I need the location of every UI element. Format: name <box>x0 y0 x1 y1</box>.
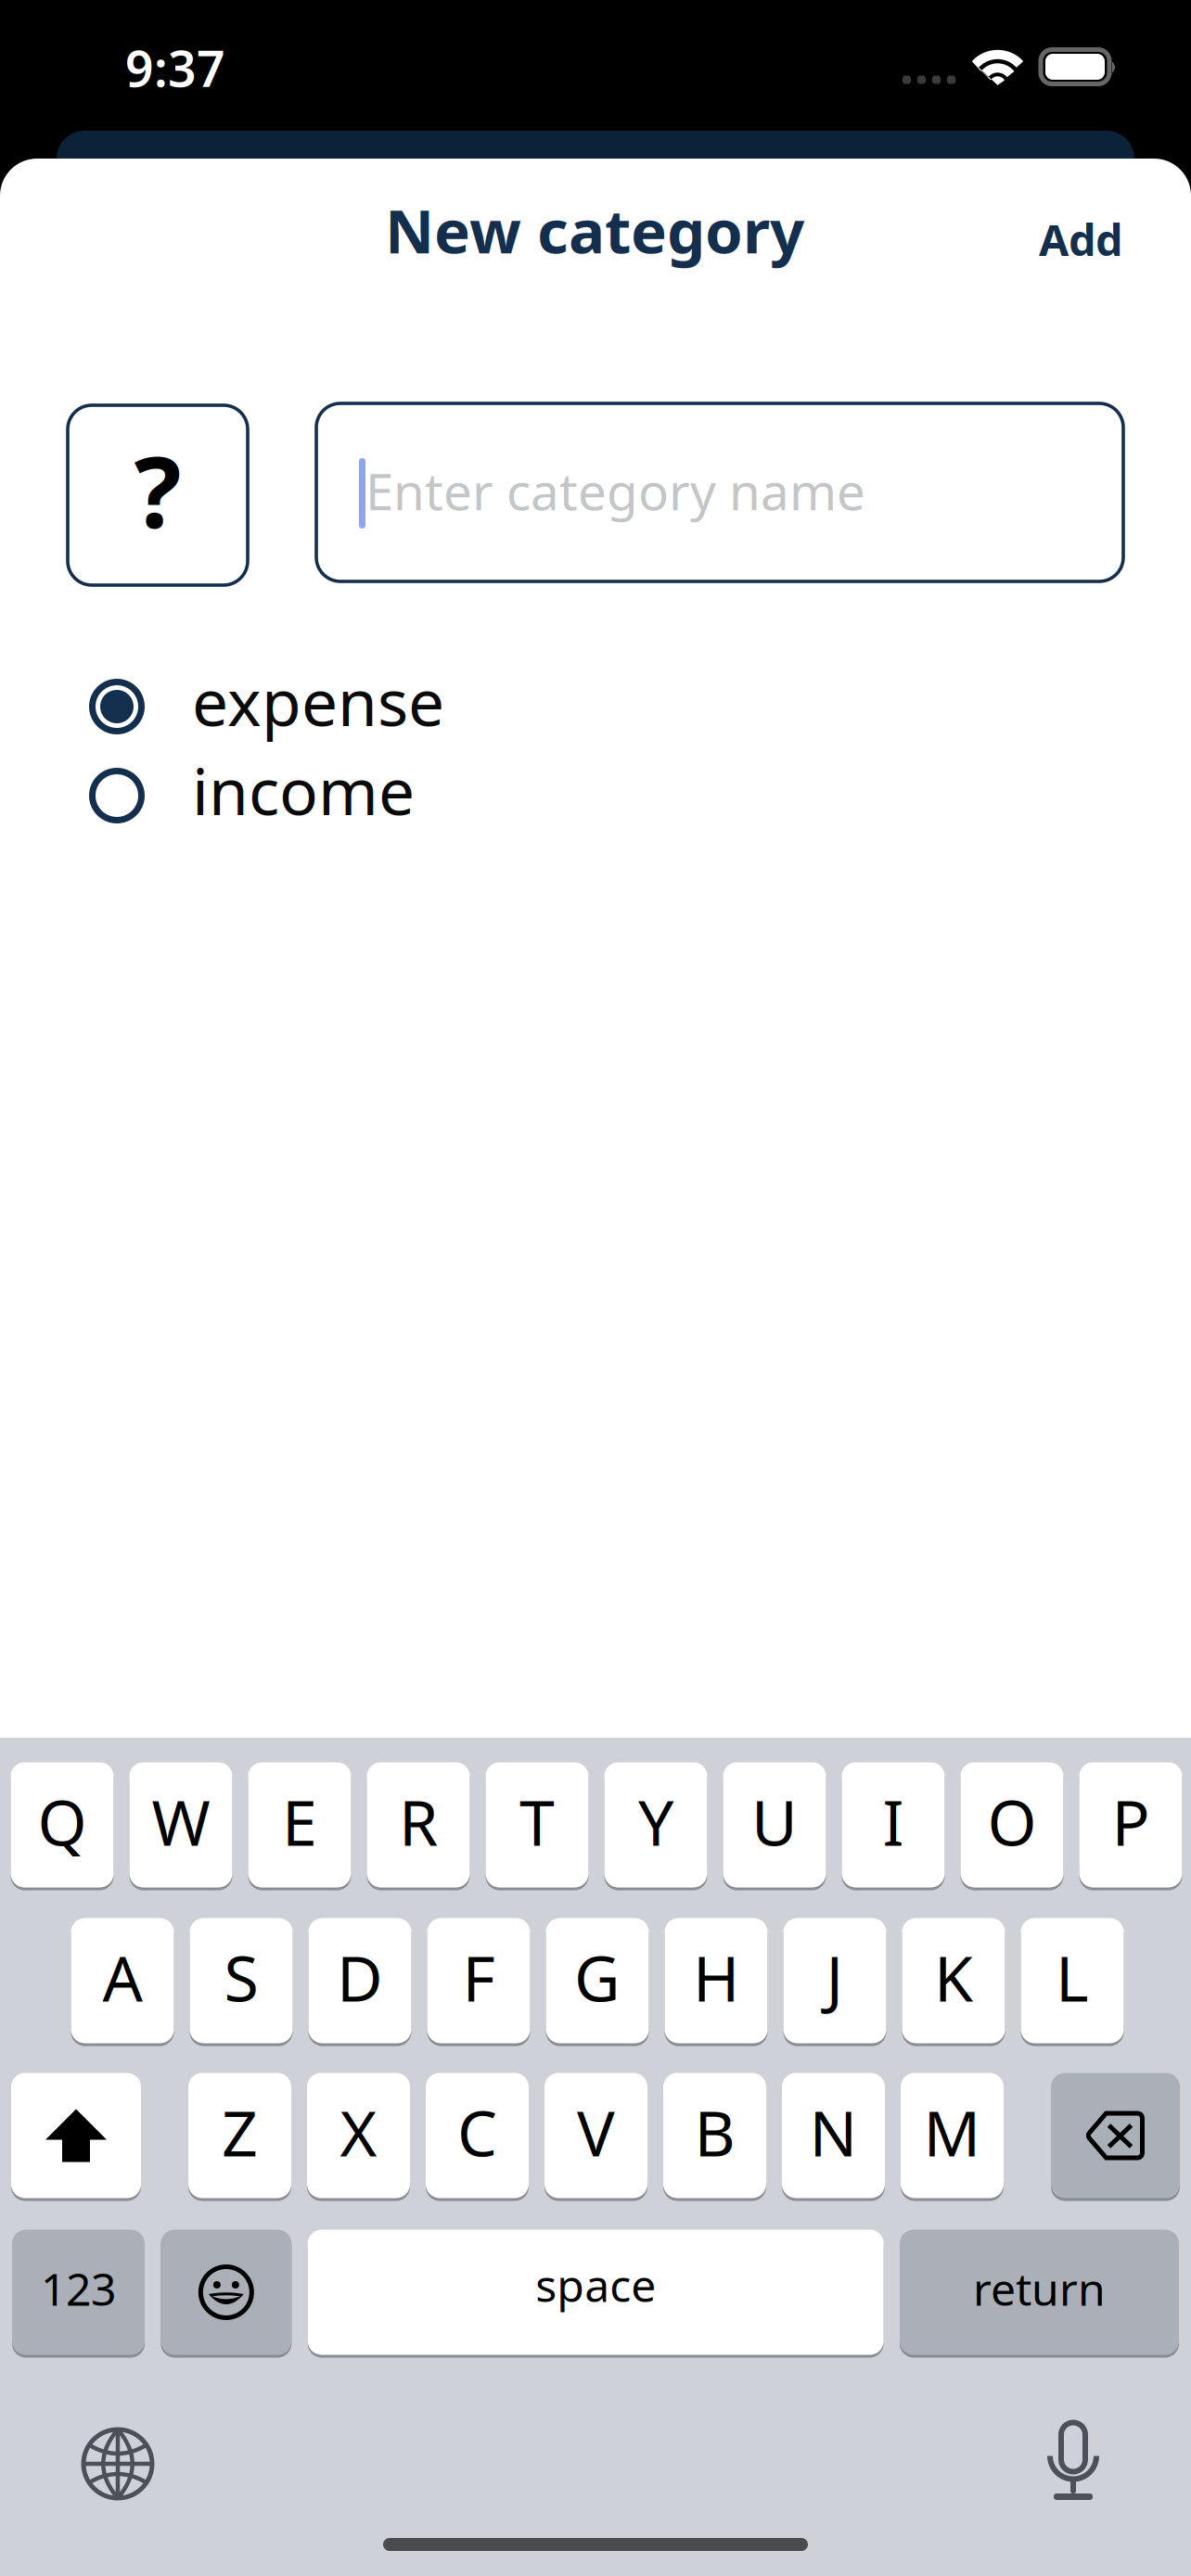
button[interactable]: F <box>427 1917 530 2045</box>
button[interactable]: B <box>663 2072 766 2200</box>
staticText: New category <box>385 190 804 270</box>
staticText: S <box>224 1935 258 2019</box>
staticText: P <box>1112 1779 1150 1863</box>
button[interactable]: N <box>782 2072 885 2200</box>
button[interactable]: P <box>1079 1761 1182 1889</box>
staticText: J <box>826 1935 844 2019</box>
button[interactable]: L <box>1021 1917 1124 2045</box>
button[interactable]: X <box>307 2072 410 2200</box>
staticText: V <box>577 2090 615 2174</box>
staticText: ? <box>134 424 181 555</box>
button[interactable]: S <box>190 1917 293 2045</box>
staticText: 9:37 <box>125 35 225 101</box>
staticText: M <box>923 2090 981 2174</box>
staticText: H <box>693 1935 739 2019</box>
button[interactable]: Y <box>604 1761 707 1889</box>
button[interactable]: G <box>546 1917 649 2045</box>
button[interactable]: Delete <box>1051 2072 1180 2200</box>
staticText: R <box>399 1779 438 1863</box>
button[interactable]: Choose icon <box>68 405 248 585</box>
staticText: D <box>337 1935 383 2019</box>
button[interactable]: T <box>486 1761 589 1889</box>
button[interactable]: Next keyboard <box>81 2427 154 2500</box>
button[interactable]: W <box>129 1761 232 1889</box>
staticText: O <box>987 1779 1037 1863</box>
button[interactable]: Add <box>1025 197 1136 282</box>
staticText: K <box>934 1935 973 2019</box>
staticText: return <box>973 2259 1106 2318</box>
staticText: space <box>535 2255 656 2314</box>
button[interactable]: D <box>308 1917 411 2045</box>
button[interactable]: Dictation <box>1047 2423 1099 2501</box>
button[interactable]: I <box>842 1761 945 1889</box>
staticText: G <box>574 1935 621 2019</box>
staticText: Q <box>38 1779 87 1863</box>
button[interactable]: M <box>901 2072 1004 2200</box>
button[interactable]: A <box>71 1917 174 2045</box>
staticText: E <box>282 1779 317 1863</box>
button[interactable]: Q <box>11 1761 114 1889</box>
button[interactable]: V <box>544 2072 647 2200</box>
button[interactable]: R <box>367 1761 470 1889</box>
staticText: U <box>751 1779 798 1863</box>
staticText: A <box>102 1935 142 2019</box>
staticText: Enter category name <box>365 457 865 524</box>
staticText: income <box>192 747 415 833</box>
staticText: Y <box>638 1779 673 1863</box>
button[interactable]: O <box>960 1761 1063 1889</box>
staticText: Z <box>222 2090 258 2174</box>
button[interactable]: Emoji <box>161 2228 292 2356</box>
button[interactable]: space <box>308 2228 884 2356</box>
staticText: W <box>152 1779 210 1863</box>
staticText: 123 <box>41 2259 116 2318</box>
staticText: L <box>1056 1935 1089 2019</box>
staticText: B <box>694 2090 735 2174</box>
button[interactable]: H <box>665 1917 768 2045</box>
button[interactable]: U <box>723 1761 826 1889</box>
button[interactable]: E <box>248 1761 351 1889</box>
staticText: F <box>462 1935 495 2019</box>
button[interactable]: income <box>89 751 664 840</box>
staticText: N <box>809 2090 858 2174</box>
button[interactable]: Z <box>188 2072 291 2200</box>
button[interactable]: Enter category name <box>316 403 1123 581</box>
button[interactable]: Shift <box>11 2072 141 2200</box>
staticText: Add <box>1039 210 1122 268</box>
staticText: T <box>519 1779 555 1863</box>
button[interactable]: expense <box>89 662 664 751</box>
button[interactable]: J <box>783 1917 886 2045</box>
staticText: I <box>883 1779 904 1863</box>
button[interactable]: C <box>426 2072 529 2200</box>
staticText: C <box>457 2090 497 2174</box>
staticText: expense <box>192 658 444 744</box>
button[interactable]: return <box>900 2228 1179 2356</box>
staticText: X <box>340 2090 377 2174</box>
button[interactable]: K <box>902 1917 1005 2045</box>
button[interactable]: 123 <box>12 2228 145 2356</box>
